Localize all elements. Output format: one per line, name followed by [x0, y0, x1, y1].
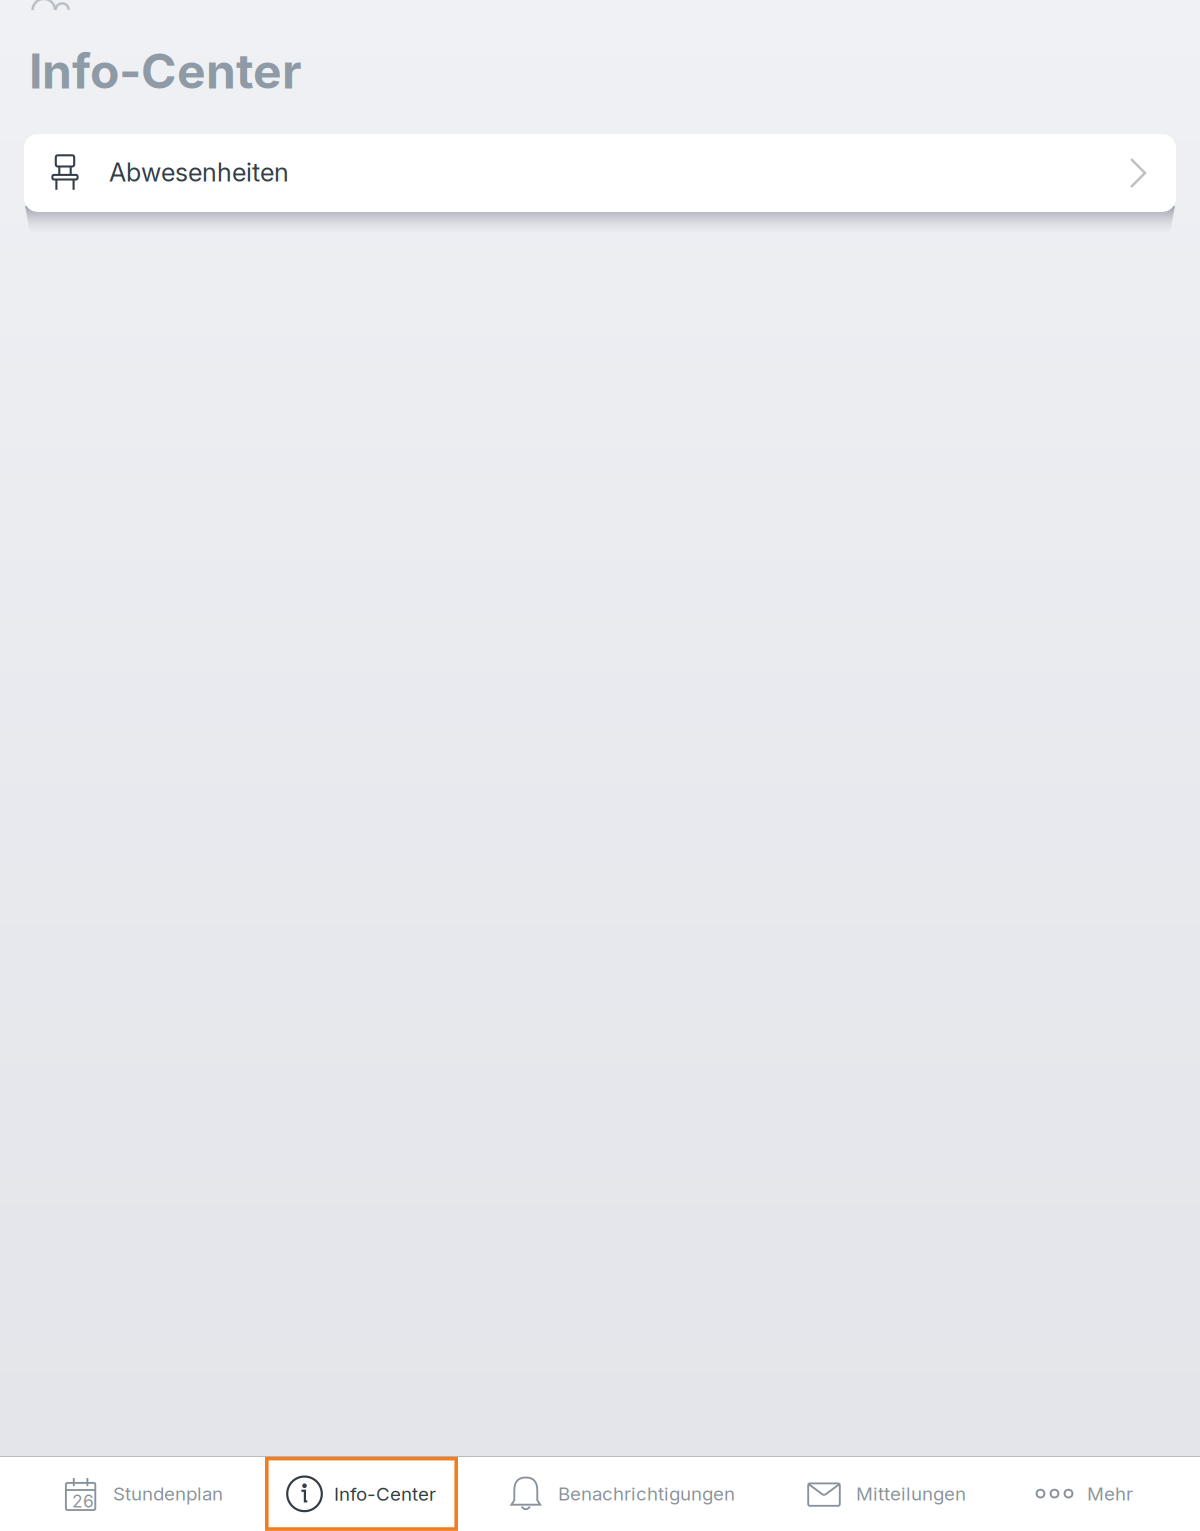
- staticText: 26: [72, 1491, 94, 1512]
- staticText: Mehr: [1087, 1482, 1133, 1505]
- staticText: Abwesenheiten: [109, 157, 289, 188]
- button[interactable]: Mitteilungen: [755, 1457, 996, 1530]
- staticText: Benachrichtigungen: [558, 1482, 735, 1505]
- button[interactable]: Benachrichtigungen: [458, 1457, 765, 1530]
- button[interactable]: Mehr: [984, 1457, 1163, 1530]
- button[interactable]: Abwesenheiten: [24, 134, 1176, 212]
- staticText: Info-Center: [334, 1483, 436, 1505]
- button[interactable]: Info-Center: [265, 1457, 458, 1531]
- staticText: Mitteilungen: [856, 1482, 966, 1505]
- staticText: Stundenplan: [113, 1482, 223, 1505]
- staticText: Info-Center: [29, 42, 302, 100]
- button[interactable]: 26: [0, 1457, 253, 1530]
